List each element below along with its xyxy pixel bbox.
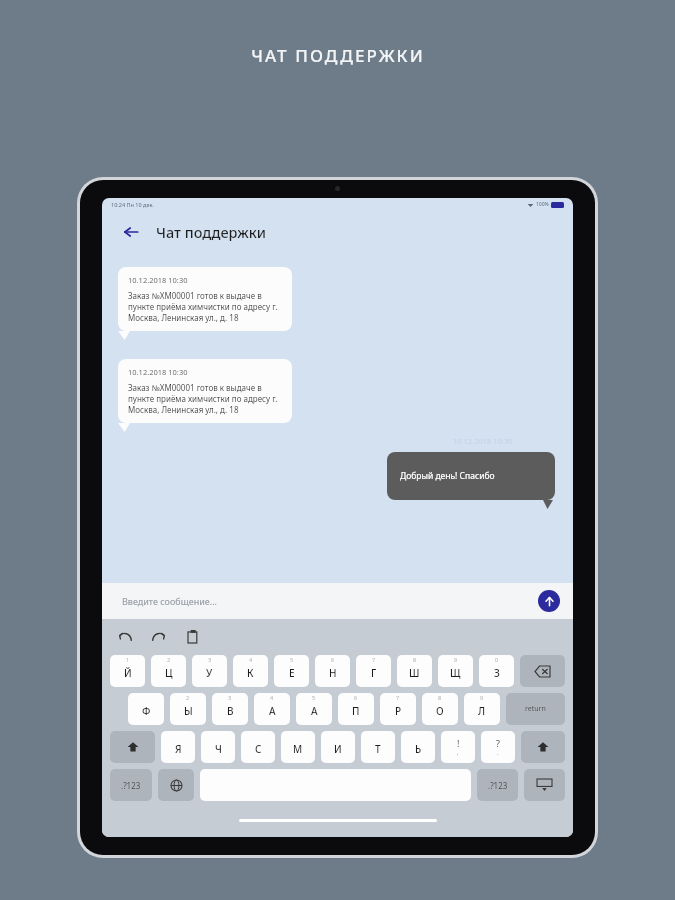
other: Shift [537,741,549,753]
button[interactable]: Удалить [520,655,565,687]
button[interactable]: 9 [438,655,473,687]
button[interactable]: 2 [170,693,206,725]
staticText: ? [496,737,500,749]
button[interactable]: 7 [356,655,391,687]
staticText: Ц [165,666,173,680]
staticText: Добрый день! Спасибо [400,470,495,482]
button[interactable]: 8 [397,655,432,687]
staticText: return [525,704,546,714]
button[interactable]: 4 [254,693,290,725]
staticText: Ы [184,704,193,718]
button[interactable]: И [321,731,355,763]
button[interactable]: Shift [521,731,565,763]
staticText: , [457,749,459,757]
staticText: 7 [396,694,400,701]
staticText: 10:24 Пн 10 дек. [111,201,154,208]
staticText: О [436,704,444,718]
button[interactable]: Скрыть клавиатуру [524,769,565,801]
staticText: Ш [409,666,420,680]
button[interactable]: return [506,693,565,725]
other: Удалить [535,666,550,677]
staticText: Чат поддержки [156,222,266,242]
staticText: 100% [536,201,549,208]
button[interactable]: 10.12.2018 10:30 [118,267,292,331]
button[interactable]: 8 [422,693,458,725]
button[interactable]: 5 [274,655,309,687]
staticText: 1 [126,656,130,663]
button[interactable]: 9 [464,693,500,725]
button[interactable]: 7 [380,693,416,725]
button[interactable]: 3 [192,655,227,687]
staticText: З [494,666,500,680]
staticText: М [293,742,303,756]
staticText: 7 [372,656,376,663]
staticText: .?123 [488,780,508,791]
button[interactable]: Повторить [150,627,168,645]
button[interactable]: М [281,731,315,763]
button[interactable]: Отправить [538,590,560,612]
staticText: Ь [415,742,422,756]
button[interactable]: 5 [296,693,332,725]
button[interactable]: 2 [151,655,186,687]
button[interactable]: ? [481,731,515,763]
staticText: 10.12.2018 10:30 [128,367,188,377]
staticText: 3 [228,694,232,701]
staticText: С [255,742,262,756]
other: Shift [127,741,139,753]
button[interactable]: С [241,731,275,763]
staticText: 2 [186,694,190,701]
staticText: ! [457,737,460,749]
staticText: 4 [249,656,253,663]
button[interactable]: Вставить [184,627,202,645]
button[interactable]: .?123 [110,769,152,801]
button[interactable]: Назад [116,217,146,247]
button[interactable]: Сменить язык [158,769,194,801]
button[interactable]: Ф [128,693,164,725]
staticText: Заказ №ХМ00001 готов к выдаче в пункте п… [128,290,282,323]
button[interactable]: Отменить [116,627,134,645]
staticText: Введите сообщение... [122,595,217,607]
staticText: П [352,704,360,718]
button[interactable]: Я [161,731,195,763]
other: Сменить язык [171,780,182,791]
button[interactable]: 3 [212,693,248,725]
button[interactable]: ! [441,731,475,763]
button[interactable]: 4 [233,655,268,687]
staticText: Р [395,704,402,718]
staticText: Е [289,666,295,680]
staticText: У [206,666,213,680]
button[interactable]: Ь [401,731,435,763]
button[interactable]: 6 [315,655,350,687]
staticText: 6 [331,656,335,663]
button[interactable]: .?123 [477,769,518,801]
staticText: И [334,742,342,756]
staticText: 10.12.2018 10:30 [128,275,188,285]
staticText: .?123 [121,780,141,791]
button[interactable]: 0 [479,655,514,687]
staticText: 3 [208,656,212,663]
staticText: 8 [413,656,417,663]
button[interactable]: Shift [110,731,155,763]
staticText: Ч [215,742,222,756]
staticText: . [497,749,499,757]
staticText: 5 [312,694,316,701]
button[interactable]: Добрый день! Спасибо [387,452,555,500]
button[interactable]: 6 [338,693,374,725]
staticText: 0 [495,656,499,663]
staticText: 6 [354,694,358,701]
staticText: 9 [454,656,458,663]
staticText: 2 [167,656,171,663]
button[interactable]: Ч [201,731,235,763]
staticText: 5 [290,656,294,663]
staticText: В [227,704,234,718]
staticText: Т [375,742,381,756]
staticText: Н [329,666,337,680]
button[interactable]: 1 [110,655,145,687]
staticText: К [247,666,254,680]
staticText: 9 [480,694,484,701]
button[interactable]: 10.12.2018 10:30 [118,359,292,423]
staticText: Й [124,666,132,680]
button[interactable]: Т [361,731,395,763]
staticText: А [269,704,276,718]
